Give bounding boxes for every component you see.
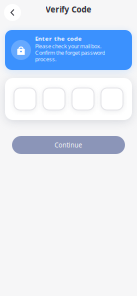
staticText: Verify Code: [45, 4, 91, 15]
button[interactable]: Continue: [12, 136, 125, 154]
button[interactable]: Back: [4, 4, 21, 21]
staticText: Please check your mail box. Confirm the …: [35, 43, 105, 62]
staticText: Continue: [54, 141, 82, 149]
staticText: Enter the code: [35, 35, 82, 42]
